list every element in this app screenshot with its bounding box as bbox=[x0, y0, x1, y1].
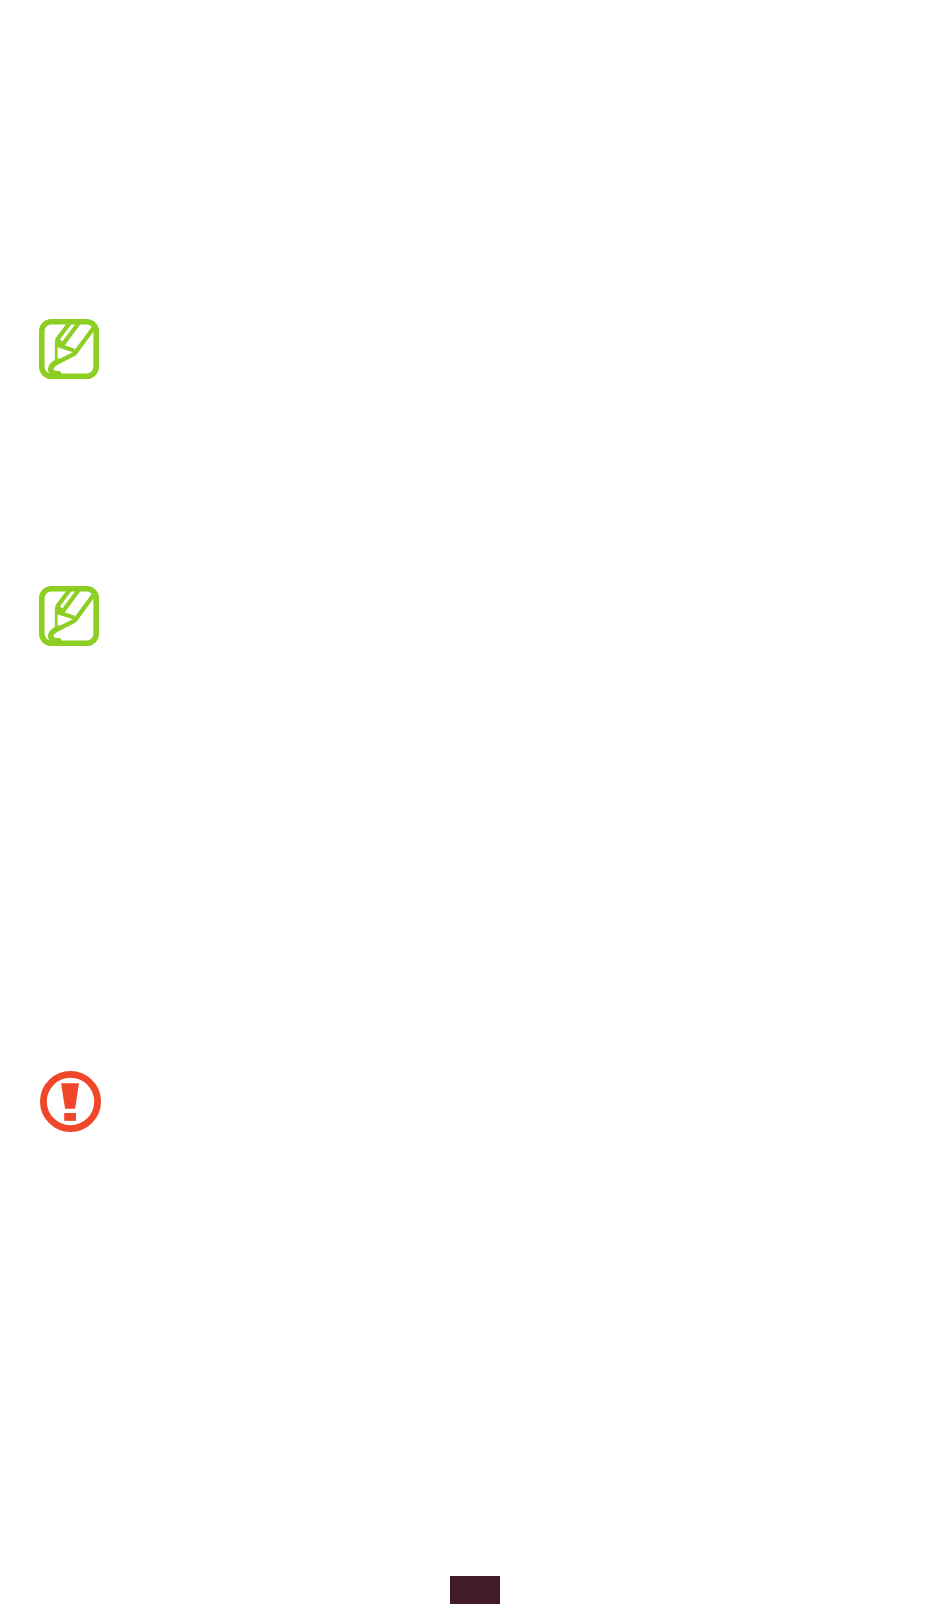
button[interactable]: Note bbox=[39, 586, 99, 646]
button[interactable]: Note bbox=[39, 319, 99, 379]
button[interactable]: Warning bbox=[40, 1071, 101, 1132]
